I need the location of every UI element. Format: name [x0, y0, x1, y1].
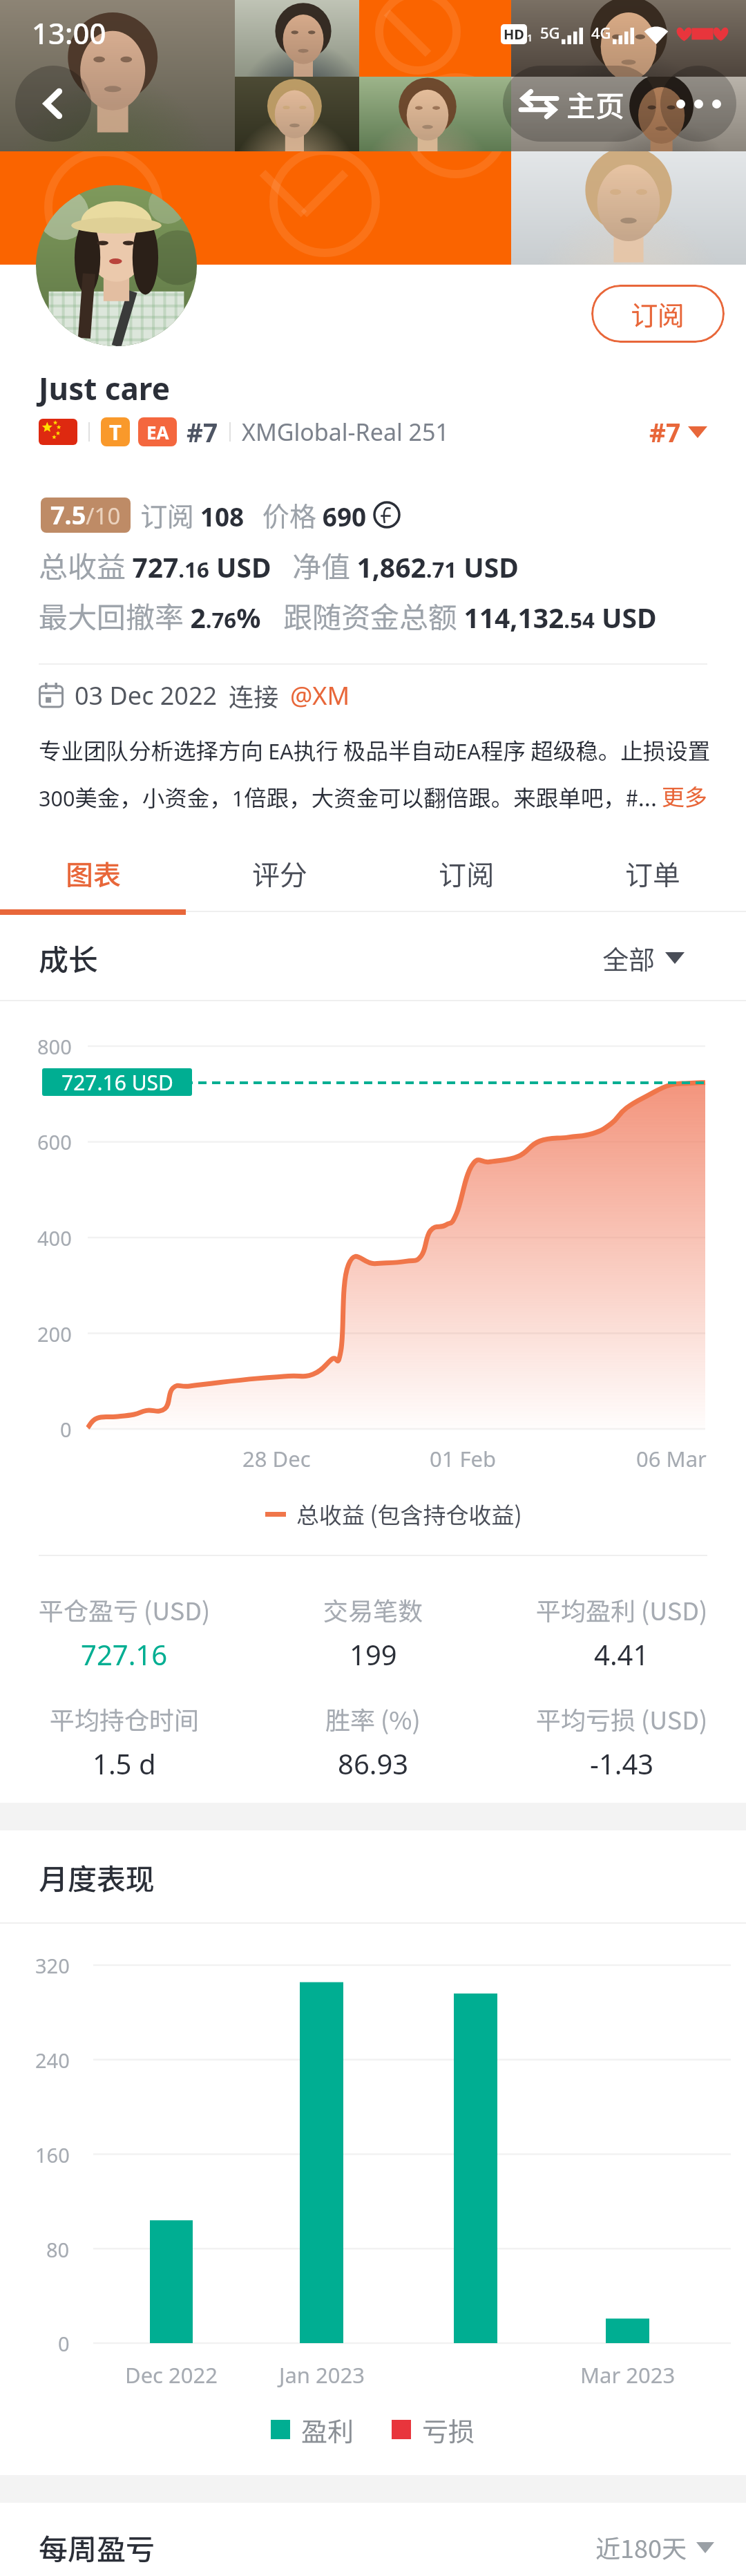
- staticText: 胜率 (%): [325, 1701, 421, 1736]
- staticText: 200: [37, 1320, 72, 1347]
- staticText: 净值 1,862.71 USD: [292, 544, 519, 586]
- staticText: 图表: [66, 853, 121, 893]
- staticText: Just care: [39, 368, 170, 409]
- staticText: 1: [527, 31, 533, 44]
- staticText: #7: [186, 415, 218, 449]
- button[interactable]: 订阅: [591, 285, 725, 343]
- staticText: 727.16 USD: [61, 1068, 173, 1096]
- staticText: 近180天: [595, 2529, 687, 2565]
- staticText: 主页: [566, 83, 625, 125]
- button[interactable]: 更多: [662, 779, 707, 813]
- staticText: 盈利: [301, 2411, 354, 2449]
- staticText: 最大回撤率 2.76%: [39, 594, 261, 636]
- staticText: 03 Dec 2022: [75, 679, 218, 712]
- staticText: 01 Feb: [430, 1444, 497, 1473]
- staticText: 订阅: [631, 294, 685, 333]
- staticText: 0: [60, 1416, 72, 1443]
- button[interactable]: 近180天: [595, 2523, 714, 2571]
- staticText: 7.5/10: [50, 498, 121, 532]
- staticText: 400: [37, 1224, 72, 1251]
- staticText: 订单: [625, 853, 680, 893]
- staticText: 1.5 d: [93, 1745, 156, 1782]
- button[interactable]: 图表: [0, 839, 186, 908]
- staticText: 4G: [591, 22, 611, 43]
- staticText: HD: [504, 25, 524, 44]
- button[interactable]: More options: [660, 66, 736, 142]
- staticText: 80: [46, 2236, 70, 2263]
- staticText: 28 Dec: [242, 1444, 311, 1473]
- staticText: 0: [58, 2330, 70, 2357]
- button[interactable]: #7: [649, 415, 707, 449]
- staticText: 订阅 108: [140, 495, 245, 534]
- staticText: EA: [146, 420, 169, 444]
- staticText: 连接: [229, 677, 279, 713]
- staticText: #7: [649, 415, 681, 449]
- button[interactable]: 主页: [521, 66, 641, 142]
- staticText: 160: [35, 2141, 70, 2168]
- staticText: 300美金，小资金，1倍跟，大资金可以翻倍跟。来跟单吧，#...: [39, 780, 657, 813]
- staticText: T: [109, 417, 122, 446]
- staticText: 亏损: [422, 2411, 475, 2449]
- staticText: 跟随资金总额 114,132.54 USD: [283, 594, 657, 636]
- staticText: Mar 2023: [580, 2360, 676, 2389]
- staticText: 专业团队分析选择方向 EA执行 极品半自动EA程序 超级稳。止损设置: [39, 733, 711, 766]
- staticText: 平仓盈亏 (USD): [39, 1591, 211, 1627]
- staticText: -1.43: [590, 1745, 654, 1782]
- staticText: 平均盈利 (USD): [536, 1591, 708, 1627]
- staticText: 评分: [252, 853, 307, 893]
- staticText: 13:00: [32, 13, 106, 53]
- staticText: 月度表现: [39, 1856, 155, 1898]
- button[interactable]: Back: [15, 66, 91, 142]
- staticText: 订阅: [439, 853, 494, 893]
- staticText: @XM: [290, 679, 350, 712]
- staticText: 320: [35, 1952, 70, 1979]
- staticText: 240: [35, 2047, 70, 2074]
- staticText: 800: [37, 1033, 72, 1060]
- staticText: 总收益 (包含持仓收益): [296, 1497, 522, 1531]
- staticText: 价格 690: [262, 495, 367, 534]
- staticText: 总收益 727.16 USD: [39, 544, 271, 586]
- staticText: Jan 2023: [279, 2360, 365, 2389]
- staticText: Dec 2022: [125, 2360, 218, 2389]
- staticText: 5G: [540, 22, 560, 43]
- staticText: 成长: [39, 936, 98, 979]
- staticText: 86.93: [338, 1745, 409, 1782]
- staticText: 4.41: [594, 1636, 649, 1673]
- staticText: 每周盈亏: [39, 2526, 155, 2568]
- button[interactable]: 订阅: [373, 839, 559, 908]
- staticText: 727.16: [81, 1636, 168, 1673]
- staticText: 199: [350, 1636, 397, 1673]
- button[interactable]: 订单: [559, 839, 746, 908]
- staticText: 交易笔数: [323, 1591, 423, 1627]
- staticText: XMGlobal-Real 251: [242, 416, 449, 448]
- staticText: 全部: [602, 939, 656, 977]
- staticText: 平均亏损 (USD): [536, 1701, 708, 1736]
- staticText: 06 Mar: [636, 1444, 707, 1473]
- button[interactable]: 全部: [602, 934, 685, 982]
- staticText: 600: [37, 1128, 72, 1155]
- button[interactable]: 评分: [186, 839, 373, 908]
- staticText: 平均持仓时间: [50, 1701, 200, 1736]
